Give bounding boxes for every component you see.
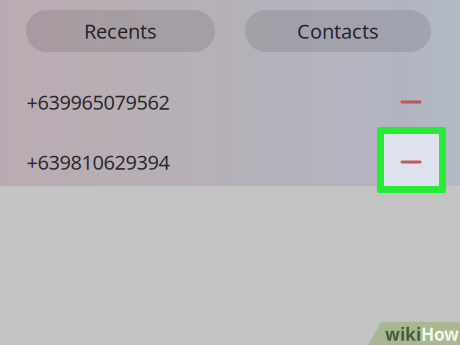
staticText: wiki xyxy=(385,322,421,345)
staticText: Contacts xyxy=(297,18,379,44)
button[interactable]: Contacts xyxy=(245,10,431,52)
button[interactable]: Recents xyxy=(26,10,215,52)
staticText: +639810629394 xyxy=(26,149,169,175)
staticText: How xyxy=(421,322,459,345)
button[interactable]: Remove +639810629394 xyxy=(387,138,435,186)
staticText: Recents xyxy=(84,18,157,44)
button[interactable]: Remove +639965079562 xyxy=(387,78,435,126)
staticText: +639965079562 xyxy=(26,89,169,115)
